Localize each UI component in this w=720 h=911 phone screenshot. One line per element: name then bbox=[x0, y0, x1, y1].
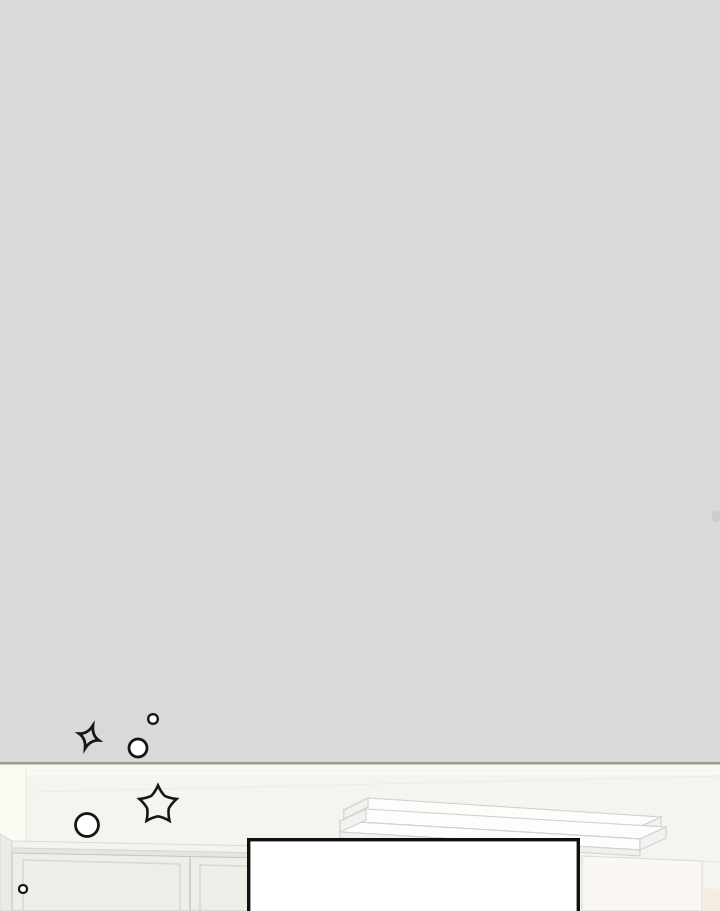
button[interactable]: Open card bbox=[247, 838, 580, 911]
